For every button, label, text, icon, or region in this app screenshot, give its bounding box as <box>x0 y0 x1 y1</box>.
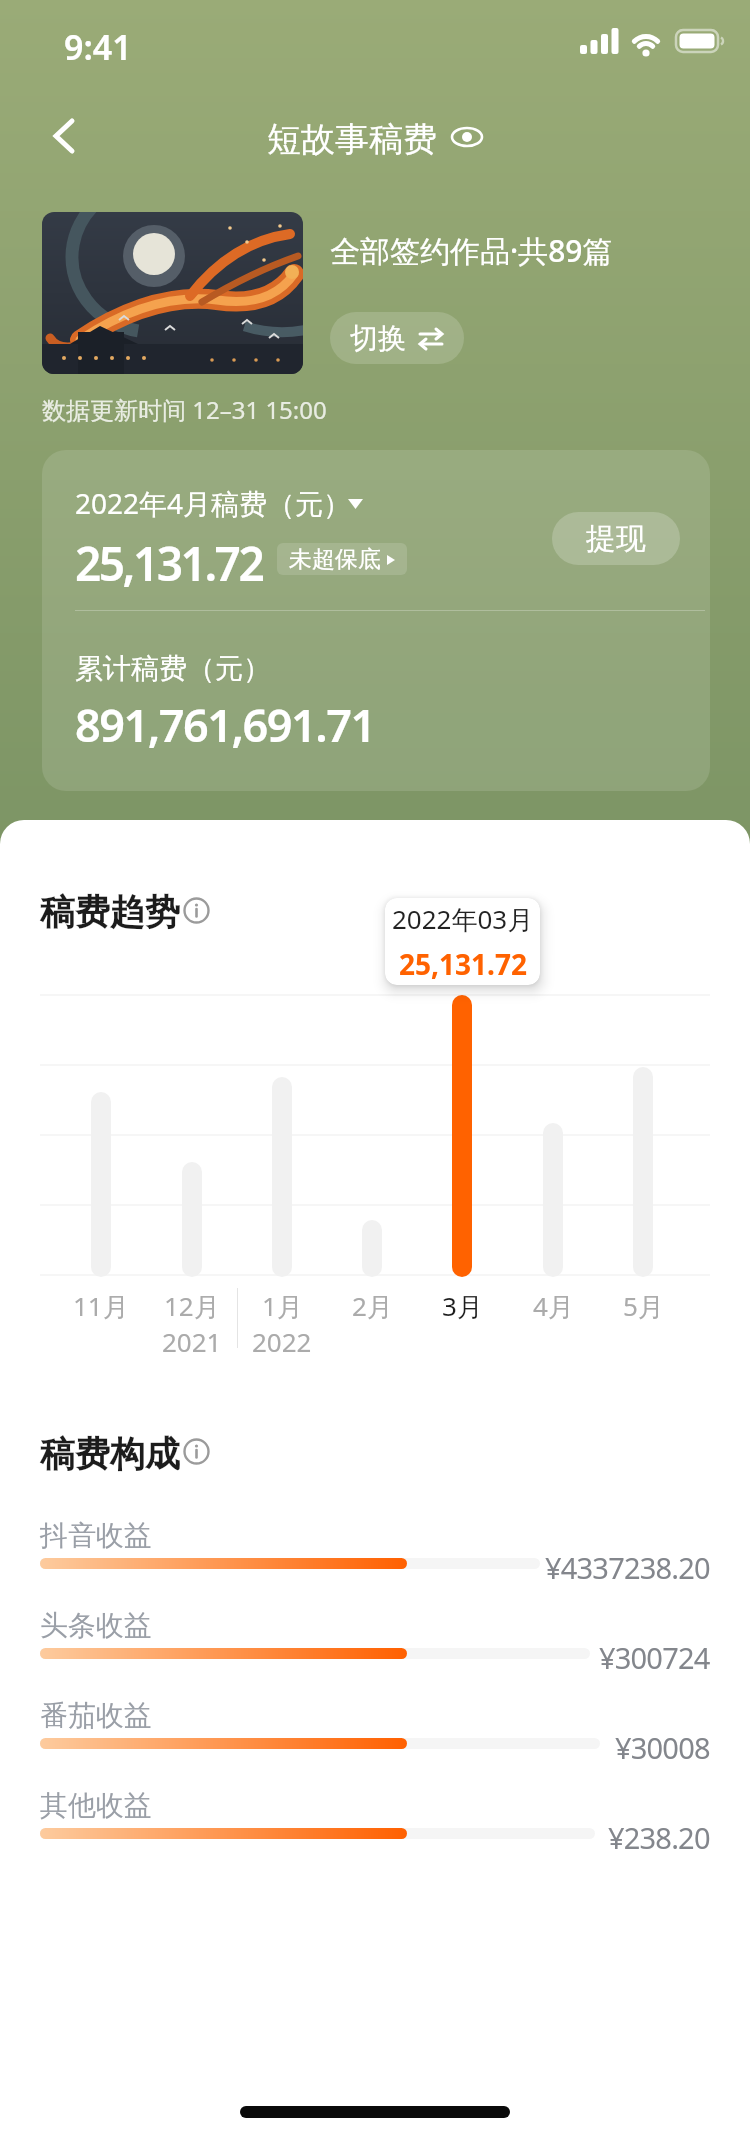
staticText: 切换 <box>350 321 406 356</box>
staticText: 3月 <box>442 1288 483 1324</box>
staticText: 2022 <box>252 1324 312 1359</box>
staticText: 短故事稿费 <box>267 118 437 156</box>
staticText: 番茄收益 <box>40 1698 152 1733</box>
staticText: 25,131.72 <box>399 945 527 983</box>
staticText: 4月 <box>533 1288 574 1324</box>
staticText: 2022年4月稿费（元） <box>75 484 352 522</box>
staticText: 数据更新时间 12–31 15:00 <box>42 393 327 426</box>
staticText: 稿费构成 <box>40 1432 180 1476</box>
staticText: ¥30008 <box>615 1728 710 1767</box>
button[interactable] <box>42 212 303 374</box>
staticText: 稿费趋势 <box>40 890 180 934</box>
staticText: 抖音收益 <box>40 1518 152 1553</box>
staticText: 12月 <box>164 1288 220 1324</box>
staticText: ¥4337238.20 <box>545 1548 710 1587</box>
staticText: 其他收益 <box>40 1788 152 1823</box>
staticText: 提现 <box>586 520 646 558</box>
staticText: 2021 <box>162 1324 222 1359</box>
staticText: 2月 <box>352 1288 393 1324</box>
staticText: 头条收益 <box>40 1608 152 1643</box>
button[interactable]: 未超保底 <box>277 543 407 575</box>
staticText: 5月 <box>623 1288 664 1324</box>
staticText: ¥238.20 <box>608 1818 710 1857</box>
button[interactable]: 切换 <box>330 312 464 364</box>
button[interactable]: 提现 <box>552 512 680 565</box>
staticText: 2022年03月 <box>392 901 534 937</box>
button[interactable] <box>451 125 483 149</box>
staticText: 25,131.72 <box>75 532 263 595</box>
staticText: 1月 <box>262 1288 303 1324</box>
button[interactable] <box>183 1438 210 1465</box>
staticText: 891,761,691.71 <box>75 694 375 755</box>
button[interactable] <box>183 897 210 924</box>
staticText: 9:41 <box>64 24 132 70</box>
staticText: 未超保底 <box>289 545 381 574</box>
staticText: ¥300724 <box>599 1638 710 1677</box>
staticText: 11月 <box>73 1288 129 1324</box>
staticText: 全部签约作品·共89篇 <box>330 230 613 271</box>
staticText: 累计稿费（元） <box>75 651 271 686</box>
button[interactable] <box>52 119 76 153</box>
